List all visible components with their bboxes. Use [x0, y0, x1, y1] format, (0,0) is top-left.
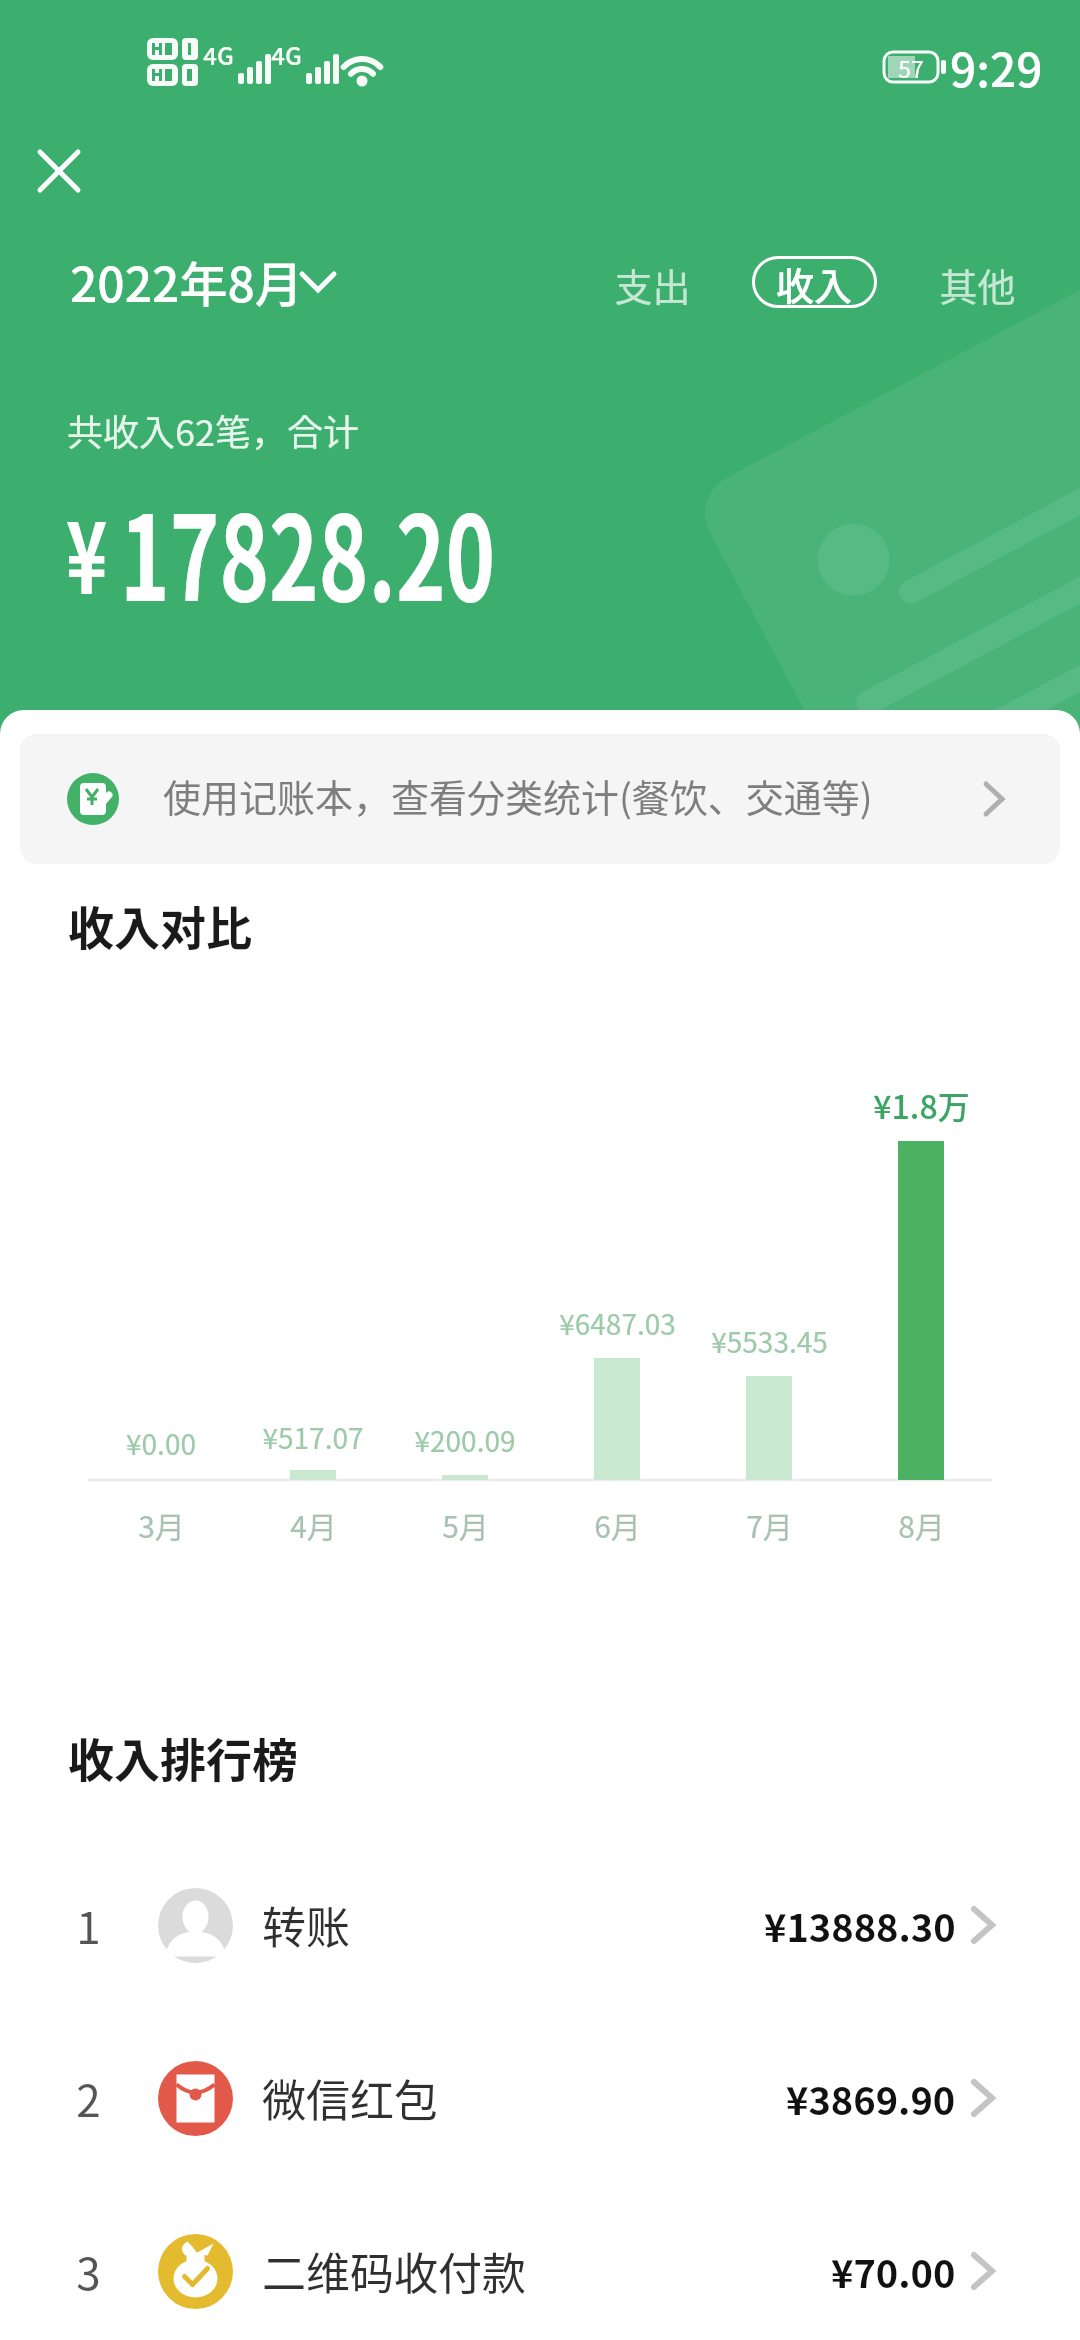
staticText: 收入	[776, 256, 853, 308]
button[interactable]: 1	[0, 1839, 1080, 2011]
staticText: 微信红包	[262, 2066, 438, 2130]
button[interactable]: 2	[0, 2012, 1080, 2184]
button[interactable]	[60, 250, 350, 320]
staticText: 2	[76, 2066, 101, 2130]
staticText: 7月	[746, 1503, 793, 1546]
staticText: ¥200.09	[414, 1420, 516, 1461]
staticText: 8月	[898, 1503, 945, 1546]
staticText: 9:29	[950, 34, 1043, 101]
button[interactable]	[20, 734, 1060, 864]
staticText: 57	[898, 51, 924, 84]
staticText: 收入对比	[68, 892, 252, 959]
staticText: ¥1.8万	[873, 1082, 970, 1128]
button[interactable]: 收入	[752, 256, 877, 308]
staticText: ¥0.00	[126, 1423, 196, 1464]
staticText: 使用记账本，查看分类统计(餐饮、交通等)	[163, 768, 873, 823]
staticText: ¥13888.30	[764, 1898, 956, 1953]
staticText: 4月	[290, 1503, 337, 1546]
staticText: 3月	[138, 1503, 185, 1546]
staticText: 4G	[271, 37, 302, 72]
staticText: ¥70.00	[831, 2244, 956, 2299]
staticText: 共收入62笔，合计	[67, 404, 359, 456]
staticText: 转账	[262, 1893, 350, 1957]
staticText: ¥517.07	[262, 1417, 364, 1458]
staticText: ¥6487.03	[559, 1303, 676, 1344]
staticText: 2022年8月	[70, 246, 303, 316]
staticText: ¥	[66, 478, 107, 623]
staticText: 收入排行榜	[68, 1724, 298, 1791]
staticText: 3	[76, 2239, 101, 2303]
staticText: 其他	[939, 257, 1016, 312]
staticText: 二维码收付款	[262, 2239, 526, 2303]
staticText: 1	[76, 1893, 101, 1957]
button[interactable]	[602, 254, 702, 314]
staticText: 支出	[614, 257, 691, 312]
staticText: 5月	[442, 1503, 489, 1546]
staticText: ¥3869.90	[786, 2071, 956, 2126]
button[interactable]: 3	[0, 2185, 1080, 2340]
button[interactable]	[927, 254, 1027, 314]
staticText: 4G	[203, 37, 234, 72]
staticText: 17828.20	[120, 465, 496, 634]
staticText: ¥5533.45	[711, 1321, 828, 1362]
button[interactable]	[24, 136, 94, 206]
staticText: 6月	[594, 1503, 641, 1546]
